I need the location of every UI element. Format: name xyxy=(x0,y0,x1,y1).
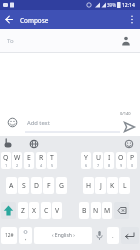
staticText: C xyxy=(44,206,49,215)
button[interactable]: K xyxy=(107,177,118,194)
button[interactable]: 12# xyxy=(1,227,17,244)
staticText: S xyxy=(22,181,26,190)
button[interactable]: V xyxy=(52,202,62,219)
staticText: 0 xyxy=(131,163,134,168)
staticText: To xyxy=(7,37,14,45)
staticText: 9 xyxy=(120,163,123,168)
button[interactable]: U xyxy=(93,152,103,169)
staticText: F xyxy=(47,181,51,190)
staticText: G xyxy=(59,181,64,190)
staticText: A xyxy=(9,181,14,190)
button[interactable]: H xyxy=(83,177,94,194)
button[interactable]: O xyxy=(116,152,126,169)
staticText: L xyxy=(123,181,127,190)
button[interactable]: I xyxy=(104,152,114,169)
button[interactable]: E xyxy=(24,152,34,169)
button[interactable]: Q xyxy=(1,152,11,169)
staticText: 8 xyxy=(108,163,111,168)
button[interactable]: C xyxy=(41,202,51,219)
staticText: W xyxy=(14,153,21,162)
button[interactable]: Y xyxy=(81,152,91,169)
button[interactable] xyxy=(19,227,32,244)
button[interactable]: W xyxy=(12,152,22,169)
staticText: , xyxy=(25,234,27,242)
button[interactable] xyxy=(114,202,129,219)
staticText: 3 xyxy=(28,163,31,168)
button[interactable]: F xyxy=(43,177,54,194)
staticText: 4 xyxy=(40,163,43,168)
staticText: I xyxy=(108,153,111,162)
staticText: N xyxy=(93,206,99,215)
staticText: D xyxy=(34,181,39,190)
staticText: K xyxy=(110,181,115,190)
staticText: J xyxy=(100,181,102,190)
staticText: O xyxy=(118,153,124,162)
button[interactable]: R xyxy=(36,152,46,169)
staticText: H xyxy=(86,181,92,190)
button[interactable]: B xyxy=(79,202,89,219)
button[interactable]: Add text xyxy=(27,119,50,127)
staticText: Q xyxy=(3,153,9,162)
staticText: 5 xyxy=(51,163,54,168)
button[interactable]: M xyxy=(102,202,112,219)
button[interactable]: X xyxy=(29,202,39,219)
staticText: 7 xyxy=(97,163,100,168)
staticText: Y xyxy=(84,153,88,162)
staticText: T xyxy=(50,153,54,162)
staticText: R xyxy=(39,153,44,162)
button[interactable] xyxy=(94,227,105,244)
staticText: Z xyxy=(21,206,25,215)
button[interactable] xyxy=(123,121,136,134)
staticText: 1 xyxy=(5,163,8,168)
button[interactable]: T xyxy=(47,152,57,169)
staticText: U xyxy=(96,153,101,162)
button[interactable]: N xyxy=(91,202,101,219)
button[interactable]: Z xyxy=(18,202,28,219)
staticText: Compose xyxy=(20,16,49,25)
staticText: E xyxy=(27,153,31,162)
staticText: P xyxy=(130,153,135,162)
staticText: M xyxy=(104,206,111,215)
staticText: 39% xyxy=(107,2,116,8)
staticText: 0/140 xyxy=(120,111,131,116)
button[interactable] xyxy=(7,117,18,128)
staticText: 12# xyxy=(5,232,14,239)
button[interactable]: . xyxy=(107,227,119,244)
staticText: 12:14 xyxy=(122,2,135,9)
staticText: ‹ English › xyxy=(52,232,75,239)
button[interactable]: P xyxy=(127,152,137,169)
button[interactable]: J xyxy=(95,177,106,194)
staticText: 6 xyxy=(85,163,88,168)
staticText: V xyxy=(55,206,60,215)
staticText: 2 xyxy=(16,163,19,168)
staticText: B xyxy=(82,206,87,215)
button[interactable] xyxy=(121,227,139,244)
button[interactable] xyxy=(1,202,16,219)
button[interactable]: ‹ English › xyxy=(34,227,92,244)
button[interactable]: S xyxy=(18,177,29,194)
button[interactable]: D xyxy=(31,177,42,194)
staticText: X xyxy=(32,206,36,215)
button[interactable]: L xyxy=(119,177,130,194)
button[interactable]: A xyxy=(6,177,17,194)
button[interactable]: Compose xyxy=(0,10,140,29)
staticText: . xyxy=(112,232,114,240)
button[interactable]: To xyxy=(0,29,140,53)
button[interactable]: G xyxy=(56,177,67,194)
